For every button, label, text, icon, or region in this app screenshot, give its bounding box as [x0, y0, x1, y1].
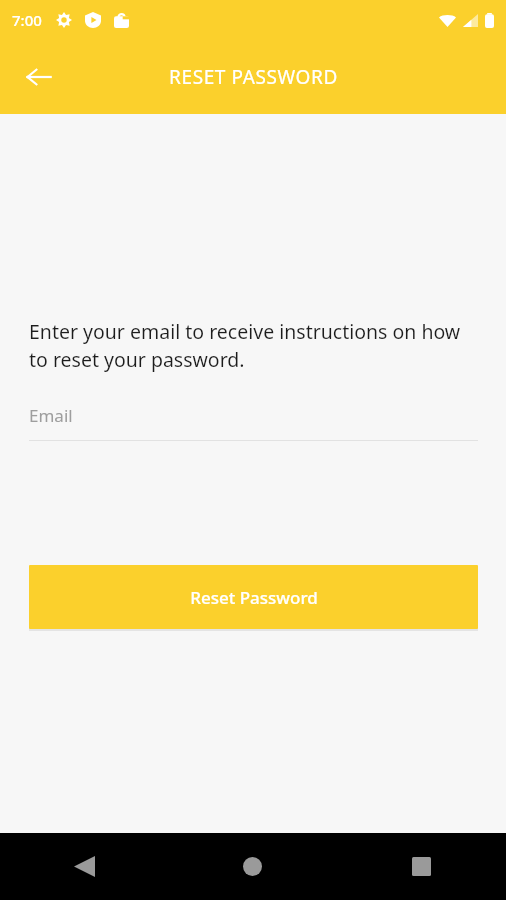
staticText: 7:00 [12, 10, 42, 30]
button[interactable]: Home [168, 833, 337, 900]
staticText: Enter your email to receive instructions… [29, 318, 478, 373]
button[interactable]: Reset Password [29, 565, 478, 629]
button[interactable]: Email [29, 400, 478, 441]
staticText: Reset Password [190, 586, 318, 609]
button[interactable]: Back [0, 833, 168, 900]
button[interactable]: Back [15, 53, 63, 101]
staticText: Email [29, 404, 73, 427]
staticText: RESET PASSWORD [169, 64, 338, 90]
button[interactable]: Recent apps [337, 833, 506, 900]
